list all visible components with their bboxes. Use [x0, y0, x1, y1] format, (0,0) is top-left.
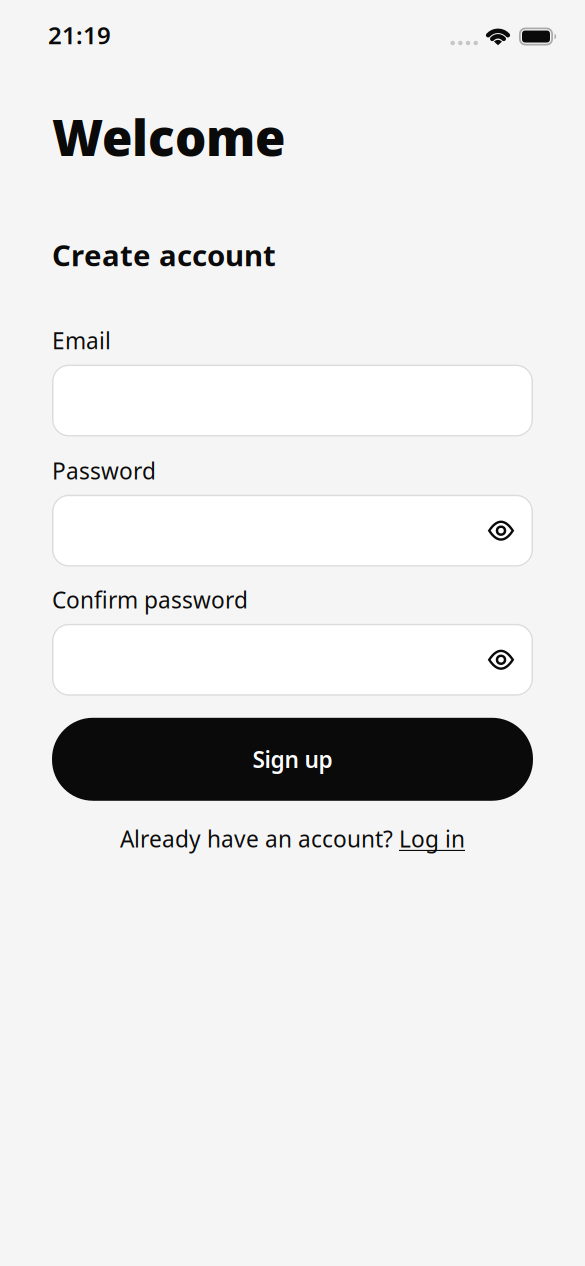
button[interactable]: Sign up	[52, 718, 533, 801]
staticText: Log in	[399, 824, 465, 854]
staticText: 21:19	[48, 19, 111, 51]
button[interactable]	[52, 624, 533, 696]
staticText: Confirm password	[52, 585, 248, 615]
staticText: Already have an account?	[120, 824, 399, 854]
button[interactable]	[52, 495, 533, 567]
staticText: Sign up	[252, 744, 332, 774]
staticText: Create account	[52, 235, 276, 274]
staticText: Email	[52, 325, 111, 356]
staticText: Password	[52, 456, 156, 486]
staticText: Welcome	[52, 104, 285, 169]
button[interactable]: Log in	[399, 824, 465, 854]
button[interactable]	[52, 365, 533, 437]
